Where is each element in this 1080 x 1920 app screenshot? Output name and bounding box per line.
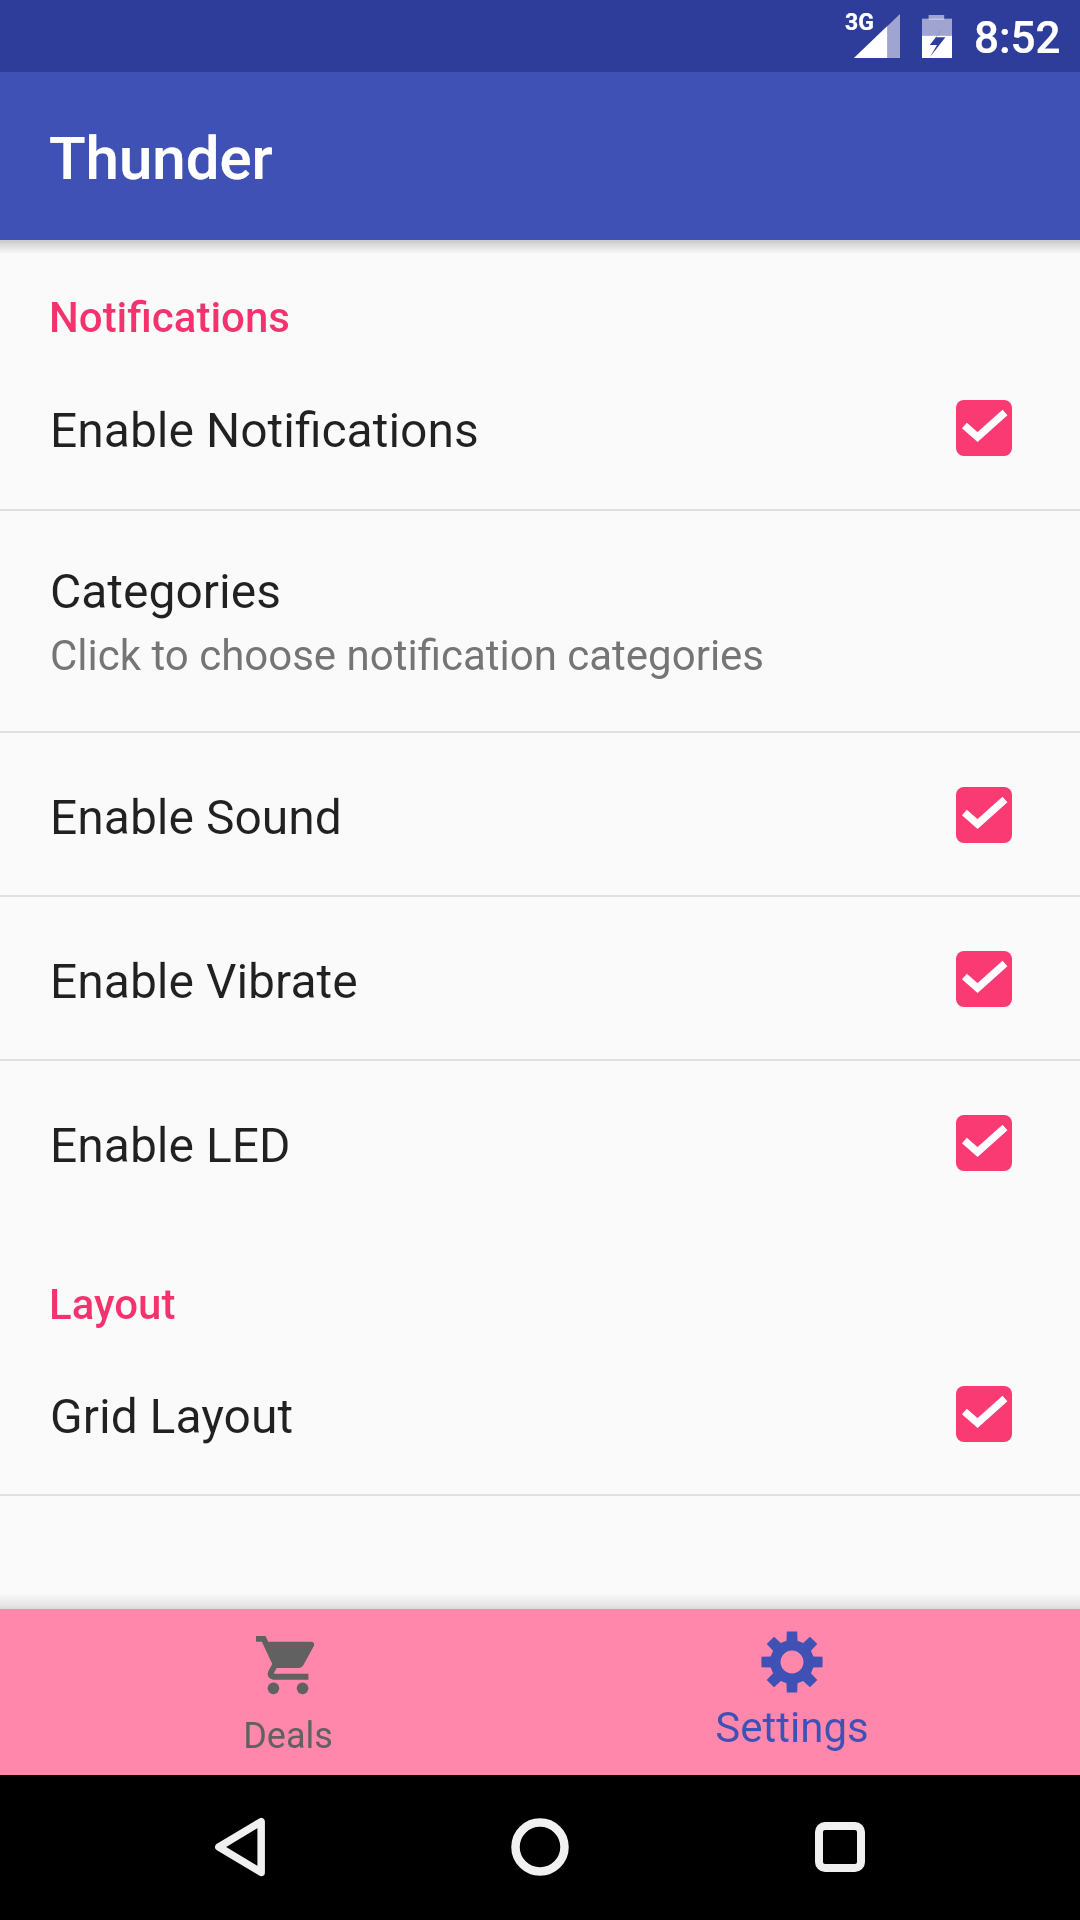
staticText: 3G [845, 9, 874, 36]
button[interactable]: Enable LED [0, 1061, 1080, 1223]
button[interactable]: Categories [0, 511, 1080, 731]
button[interactable]: Enable Vibrate [0, 897, 1080, 1059]
staticText: Categories [50, 563, 281, 619]
staticText: Enable LED [50, 1117, 956, 1173]
button[interactable]: Grid Layout [0, 1332, 1080, 1494]
staticText: Enable Vibrate [50, 953, 956, 1009]
button[interactable]: Home [490, 1797, 590, 1897]
staticText: Enable Sound [50, 789, 956, 845]
button[interactable]: Deals [153, 1609, 423, 1775]
button[interactable]: Back [190, 1797, 290, 1897]
staticText: 8:52 [974, 12, 1061, 64]
staticText: Click to choose notification categories [50, 631, 765, 680]
staticText: Thunder [49, 123, 273, 193]
staticText: Deals [243, 1715, 333, 1757]
button[interactable]: Settings [657, 1609, 927, 1775]
staticText: Settings [715, 1703, 869, 1752]
staticText: Grid Layout [50, 1388, 956, 1444]
staticText: Notifications [49, 293, 290, 342]
staticText: Enable Notifications [50, 402, 956, 458]
staticText: Layout [49, 1280, 176, 1329]
button[interactable]: Enable Sound [0, 733, 1080, 895]
button[interactable]: Enable Notifications [0, 345, 1080, 509]
button[interactable]: Recents [790, 1797, 890, 1897]
